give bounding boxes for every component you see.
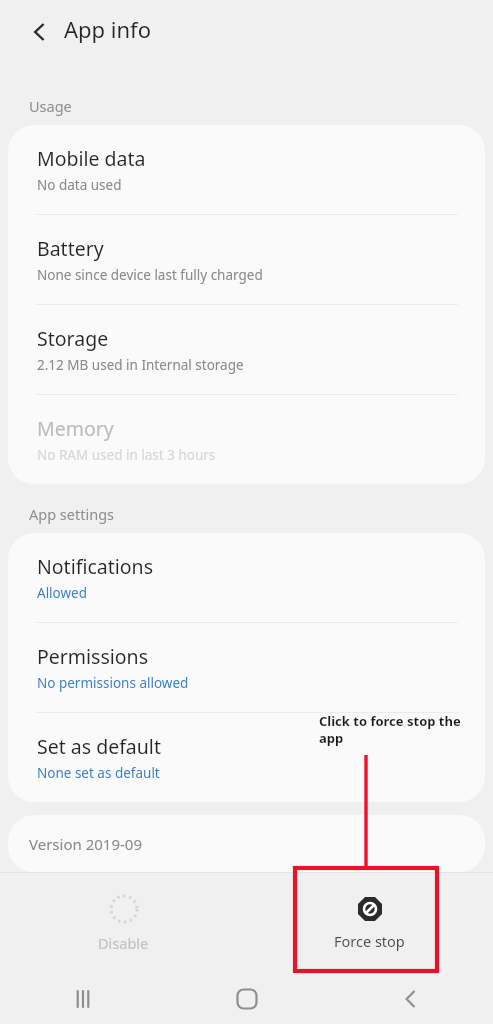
staticText: No RAM used in last 3 hours [37,446,216,464]
button[interactable]: Disable [0,873,246,973]
button[interactable]: Permissions [8,623,485,713]
staticText: Allowed [37,584,88,602]
staticText: App info [64,14,151,44]
button[interactable]: Battery [8,215,485,305]
button[interactable]: Back [18,10,62,54]
staticText: Mobile data [37,145,146,172]
button[interactable]: Set as default [8,713,485,802]
staticText: Set as default [37,733,161,760]
button[interactable]: Version 2019-09 [8,815,485,872]
button[interactable]: Force stop [246,873,493,973]
button[interactable]: Notifications [8,533,485,623]
staticText: 2.12 MB used in Internal storage [37,356,244,374]
staticText: Memory [37,415,114,442]
staticText: No permissions allowed [37,674,189,692]
staticText: Battery [37,235,104,262]
button[interactable]: Back [329,973,493,1024]
staticText: Version 2019-09 [29,834,142,854]
staticText: App settings [29,504,115,524]
staticText: Permissions [37,643,149,670]
button[interactable]: Memory [8,395,485,484]
staticText: None set as default [37,764,160,782]
staticText: No data used [37,176,122,194]
button[interactable]: Recents [0,973,165,1024]
staticText: Disable [98,933,149,953]
button[interactable]: Mobile data [8,125,485,215]
staticText: Storage [37,325,109,352]
staticText: Force stop [334,931,405,951]
staticText: Click to force stop the app [319,712,479,747]
staticText: Notifications [37,553,153,580]
staticText: Usage [29,96,72,116]
button[interactable]: Home [165,973,329,1024]
button[interactable]: Storage [8,305,485,395]
staticText: None since device last fully charged [37,266,263,284]
